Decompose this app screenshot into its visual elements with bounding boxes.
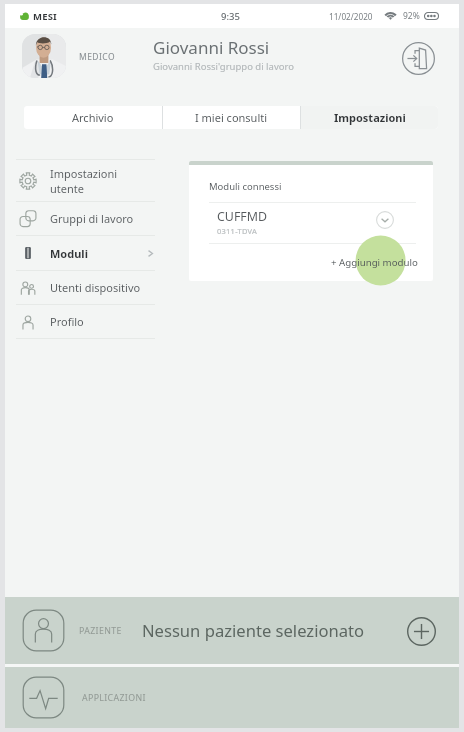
staticText: Archivio xyxy=(72,110,114,125)
staticText: Moduli xyxy=(50,246,88,261)
button[interactable]: PAZIENTE xyxy=(5,597,459,664)
button[interactable]: APPLICAZIONI xyxy=(5,667,459,728)
button[interactable]: Profile photo xyxy=(22,34,66,78)
button[interactable]: Archivio xyxy=(24,106,162,129)
staticText: I miei consulti xyxy=(195,110,268,125)
button[interactable]: Impostazioni xyxy=(301,106,438,129)
button[interactable]: Expand module xyxy=(373,208,397,232)
button[interactable]: Add patient xyxy=(404,614,438,648)
staticText: Gruppi di lavoro xyxy=(50,211,134,226)
button[interactable]: Profilo xyxy=(5,305,171,338)
button[interactable]: Impostazioni xyxy=(5,160,171,201)
staticText: + Aggiungi modulo xyxy=(331,256,418,269)
staticText: utente xyxy=(50,181,84,196)
staticText: Giovanni Rossi'gruppo di lavoro xyxy=(153,60,294,73)
staticText: 0311-TDVA xyxy=(217,226,258,236)
button[interactable]: Moduli xyxy=(5,236,171,270)
staticText: 11/02/2020 xyxy=(329,11,373,22)
staticText: Utenti dispositivo xyxy=(50,280,141,295)
staticText: Nessun paziente selezionato xyxy=(142,619,365,642)
staticText: Giovanni Rossi xyxy=(153,36,270,59)
button[interactable]: I miei consulti xyxy=(163,106,300,129)
staticText: 92% xyxy=(403,10,420,22)
button[interactable]: + Aggiungi modulo xyxy=(189,244,433,281)
staticText: MEDICO xyxy=(79,51,116,63)
staticText: Moduli connessi xyxy=(209,180,282,193)
staticText: Impostazioni xyxy=(50,166,118,181)
staticText: MESI xyxy=(33,10,58,23)
button[interactable]: Logout xyxy=(400,40,437,77)
staticText: PAZIENTE xyxy=(79,625,122,637)
staticText: Profilo xyxy=(50,314,84,329)
button[interactable]: Gruppi di lavoro xyxy=(5,202,171,235)
staticText: Impostazioni xyxy=(334,110,406,125)
staticText: APPLICAZIONI xyxy=(82,692,146,704)
button[interactable]: Utenti dispositivo xyxy=(5,271,171,304)
staticText: CUFFMD xyxy=(217,208,268,225)
staticText: 9:35 xyxy=(221,10,240,23)
